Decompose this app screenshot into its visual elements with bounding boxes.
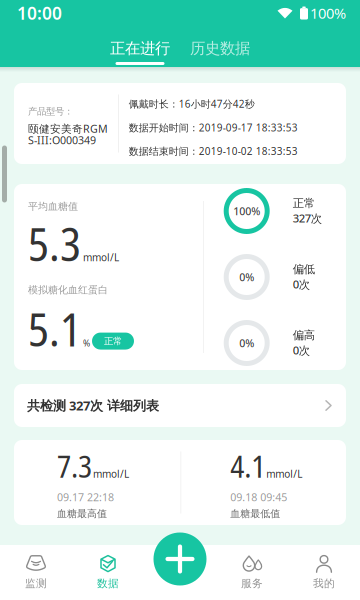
button[interactable]: 数据 (72, 545, 144, 600)
button[interactable]: 正在进行 (110, 39, 170, 65)
staticText: 10:00 (17, 1, 62, 24)
staticText: 0次 (293, 276, 310, 292)
staticText: 0次 (293, 342, 310, 358)
staticText: 模拟糖化血红蛋白 (28, 283, 108, 296)
staticText: 颐健安美奇RGM (28, 121, 108, 136)
button[interactable]: 服务 (216, 545, 288, 600)
staticText: S-III:O000349 (28, 133, 96, 147)
staticText: 血糖最高值 (57, 507, 107, 520)
staticText: 产品型号： (28, 106, 73, 117)
staticText: 327次 (293, 210, 322, 226)
staticText: 监测 (25, 577, 47, 590)
staticText: 数据 (97, 577, 119, 590)
staticText: 佩戴时长：16小时47分42秒 (129, 97, 255, 111)
staticText: 服务 (241, 577, 263, 590)
staticText: mmol/L (266, 467, 302, 481)
staticText: 正常 (104, 335, 122, 347)
button[interactable]: 监测 (0, 545, 72, 600)
staticText: 100% (310, 3, 346, 23)
staticText: 历史数据 (190, 39, 250, 58)
staticText: 我的 (313, 577, 335, 590)
staticText: 5.3 (28, 213, 81, 274)
button[interactable]: 历史数据 (190, 39, 250, 65)
staticText: 正常 (293, 196, 315, 210)
staticText: 偏低 (293, 262, 315, 276)
staticText: 平均血糖值 (28, 200, 78, 213)
staticText: mmol/L (93, 467, 129, 481)
staticText: 血糖最低值 (230, 507, 280, 520)
staticText: 09.17 22:18 (57, 490, 114, 504)
staticText: 0% (239, 270, 254, 284)
staticText: 4.1 (230, 445, 265, 487)
button[interactable]: Add record (153, 532, 206, 585)
button[interactable]: 我的 (288, 545, 360, 600)
staticText: 100% (233, 204, 260, 218)
staticText: 09.18 09:45 (230, 490, 287, 504)
button[interactable]: 共检测 327次 详细列表 (14, 384, 346, 427)
staticText: % (83, 337, 90, 349)
staticText: 5.1 (28, 298, 81, 360)
staticText: 偏高 (293, 328, 315, 342)
staticText: 共检测 327次 详细列表 (27, 397, 159, 414)
staticText: 正在进行 (110, 39, 170, 58)
staticText: 数据结束时间：2019-10-02 18:33:53 (129, 144, 298, 158)
staticText: 数据开始时间：2019-09-17 18:33:53 (129, 121, 298, 134)
staticText: 0% (239, 336, 254, 350)
staticText: 7.3 (57, 445, 92, 487)
staticText: mmol/L (83, 250, 119, 264)
